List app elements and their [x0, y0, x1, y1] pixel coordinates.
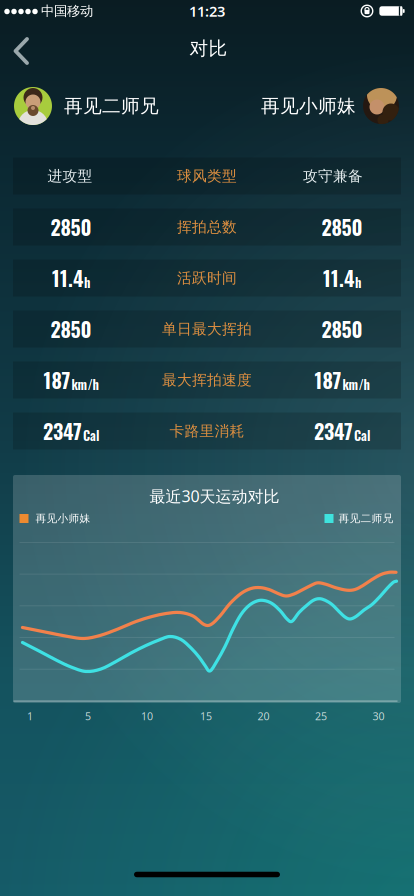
- staticText: 攻守兼备: [303, 167, 363, 185]
- staticText: km/h: [342, 375, 369, 394]
- staticText: Cal: [83, 426, 99, 445]
- staticText: 球风类型: [177, 167, 237, 185]
- staticText: km/h: [71, 375, 98, 394]
- staticText: 2850: [321, 314, 362, 344]
- staticText: 中国移动: [41, 3, 93, 19]
- staticText: 最大挥拍速度: [162, 371, 252, 389]
- staticText: 进攻型: [47, 167, 92, 185]
- staticText: 187: [314, 365, 341, 395]
- staticText: 20: [257, 709, 269, 723]
- staticText: 2850: [321, 212, 362, 242]
- staticText: 再见小师妹: [261, 94, 356, 117]
- button[interactable]: Back: [0, 0, 44, 70]
- staticText: 再见二师兄: [64, 94, 159, 117]
- staticText: 2347: [43, 416, 82, 446]
- staticText: 187: [43, 365, 70, 395]
- staticText: h: [355, 273, 361, 292]
- staticText: 最近30天运动对比: [149, 485, 279, 507]
- staticText: 2347: [314, 416, 353, 446]
- staticText: 对比: [189, 37, 227, 60]
- staticText: 25: [315, 709, 327, 723]
- staticText: h: [84, 273, 90, 292]
- staticText: 2850: [50, 314, 91, 344]
- staticText: 单日最大挥拍: [162, 320, 252, 338]
- staticText: 15: [200, 709, 212, 723]
- staticText: 10: [141, 709, 153, 723]
- button[interactable]: 再见二师兄: [14, 87, 159, 125]
- staticText: 11:23: [189, 1, 225, 21]
- staticText: 再见二师兄: [338, 512, 393, 525]
- staticText: 卡路里消耗: [169, 422, 244, 440]
- staticText: 30: [372, 709, 384, 723]
- staticText: 5: [85, 709, 91, 723]
- staticText: Cal: [354, 426, 370, 445]
- staticText: 11.4: [52, 263, 83, 293]
- staticText: 1: [27, 709, 33, 723]
- button[interactable]: 再见小师妹: [261, 88, 399, 124]
- staticText: 2850: [50, 212, 91, 242]
- staticText: 活跃时间: [177, 269, 237, 287]
- staticText: 再见小师妹: [35, 512, 90, 525]
- staticText: 挥拍总数: [177, 218, 237, 236]
- staticText: 11.4: [323, 263, 354, 293]
